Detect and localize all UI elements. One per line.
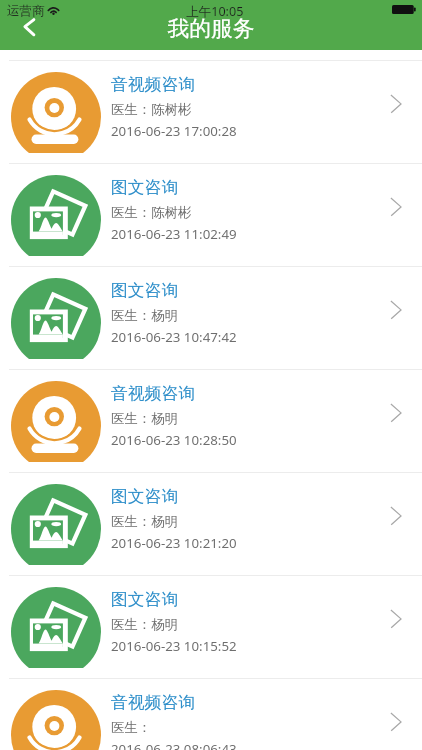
staticText: 2016-06-23 17:00:28: [111, 122, 237, 140]
staticText: 音视频咨询: [111, 74, 195, 95]
button[interactable]: 图文咨询: [0, 472, 422, 575]
button[interactable]: 图文咨询: [0, 266, 422, 369]
staticText: 图文咨询: [111, 177, 179, 198]
button[interactable]: 图文咨询: [0, 163, 422, 266]
button[interactable]: 图文咨询: [0, 575, 422, 678]
staticText: 2016-06-23 10:47:42: [111, 328, 237, 346]
staticText: 医生：杨明: [111, 616, 178, 633]
staticText: 医生：: [111, 719, 152, 736]
staticText: 图文咨询: [111, 280, 179, 301]
staticText: 上午10:05: [186, 3, 244, 20]
button[interactable]: 音视频咨询: [0, 369, 422, 472]
staticText: 医生：陈树彬: [111, 204, 192, 221]
staticText: 医生：杨明: [111, 410, 178, 427]
staticText: 2016-06-23 11:02:49: [111, 225, 237, 243]
button[interactable]: Back: [10, 14, 44, 42]
staticText: 图文咨询: [111, 589, 179, 610]
button[interactable]: 音视频咨询: [0, 60, 422, 163]
button[interactable]: 音视频咨询: [0, 678, 422, 750]
staticText: 音视频咨询: [111, 383, 195, 404]
staticText: 2016-06-23 08:06:43: [111, 740, 237, 750]
staticText: 医生：陈树彬: [111, 101, 192, 118]
staticText: 我的服务: [167, 15, 255, 42]
staticText: 医生：杨明: [111, 513, 178, 530]
staticText: 2016-06-23 10:28:50: [111, 431, 237, 449]
staticText: 2016-06-23 10:21:20: [111, 534, 237, 552]
staticText: 图文咨询: [111, 486, 179, 507]
staticText: 运营商: [7, 3, 45, 19]
staticText: 医生：杨明: [111, 307, 178, 324]
staticText: 音视频咨询: [111, 692, 195, 713]
staticText: 2016-06-23 10:15:52: [111, 637, 237, 655]
